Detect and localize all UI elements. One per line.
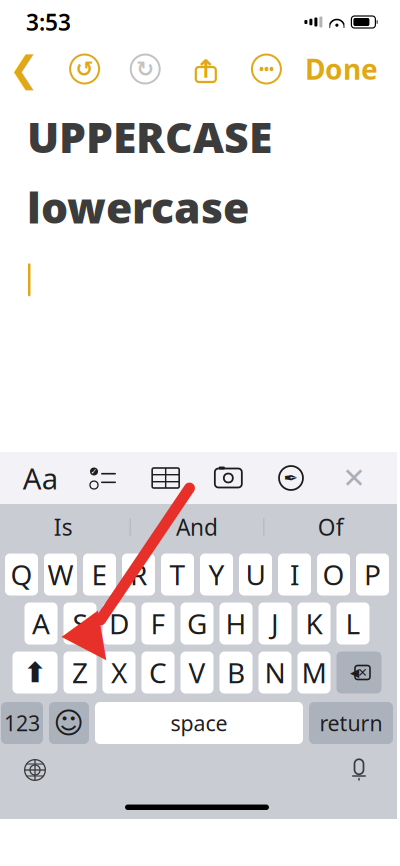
staticText: ◀ [350,666,359,679]
button[interactable]: H [219,602,252,644]
button[interactable]: Z [63,651,96,693]
button[interactable]: Share [184,45,228,93]
button[interactable]: W [44,553,77,595]
staticText: ↻ [136,57,154,81]
staticText: Q [10,556,32,593]
button[interactable]: Close [322,452,385,504]
button[interactable]: P [356,553,389,595]
staticText: C [149,654,167,691]
staticText: W [47,556,73,593]
staticText: ✕ [357,666,367,679]
staticText: return [319,709,382,737]
staticText: J [271,605,279,642]
staticText: space [170,709,227,737]
button[interactable]: K [297,602,330,644]
button[interactable]: F [141,602,174,644]
staticText: F [150,605,165,642]
button[interactable]: T [161,553,194,595]
button[interactable]: I [278,553,311,595]
staticText: H [225,605,246,642]
staticText: ❮ [9,49,39,89]
staticText: R [130,556,147,593]
button[interactable]: L [336,602,369,644]
button[interactable]: return [309,702,393,744]
button[interactable]: B [219,651,252,693]
staticText: D [109,605,129,642]
button[interactable]: Markup [260,452,322,504]
button[interactable]: C [141,651,174,693]
staticText: And [176,512,218,542]
button[interactable]: X [102,651,135,693]
staticText: U [245,556,265,593]
button[interactable]: Redo [123,45,167,93]
staticText: I [290,556,299,593]
button[interactable]: S [63,602,96,644]
button[interactable]: O [317,553,350,595]
button[interactable]: Camera [197,452,260,504]
staticText: T [169,556,185,593]
staticText: Y [208,556,224,593]
staticText: E [91,556,107,593]
staticText: ••• [259,60,274,78]
staticText: Z [72,654,88,691]
staticText: UPPERCASE [27,108,272,165]
button[interactable]: Y [200,553,233,595]
staticText: Aa [23,458,58,497]
button[interactable]: More [244,45,288,93]
button[interactable]: Table [134,452,197,504]
staticText: ▼ [67,605,112,671]
staticText: ⬆ [23,657,46,688]
staticText: ✓ [90,467,97,476]
button[interactable]: Emoji [49,702,89,744]
staticText: ✒ [283,468,298,488]
button[interactable]: N [258,651,291,693]
staticText: ☺ [53,706,84,740]
button[interactable]: Back [2,45,46,93]
staticText: K [305,605,322,642]
button[interactable]: Is [0,504,130,550]
staticText: S [72,605,87,642]
staticText: Done [305,50,378,88]
staticText: ✕ [342,462,365,494]
button[interactable]: R [122,553,155,595]
button[interactable]: Undo [63,45,107,93]
button[interactable]: U [239,553,272,595]
button[interactable]: Next keyboard [13,753,57,787]
staticText: lowercase [27,179,249,235]
staticText: M [301,654,326,691]
button[interactable]: M [297,651,330,693]
button[interactable]: A [24,602,57,644]
button[interactable]: And [131,504,263,550]
button[interactable]: space [95,702,303,744]
button[interactable]: Q [5,553,38,595]
button[interactable]: D [102,602,135,644]
staticText: P [364,556,381,593]
staticText: X [111,654,127,691]
button[interactable]: Shift [12,651,57,693]
button[interactable]: Of [264,504,397,550]
staticText: A [32,605,50,642]
staticText: L [345,605,360,642]
button[interactable]: Checklist [72,452,134,504]
button[interactable]: E [83,553,116,595]
button[interactable]: Text format [9,452,72,504]
staticText: Is [54,512,73,542]
button[interactable]: G [180,602,213,644]
staticText: ↑ [195,55,216,83]
staticText: G [187,605,207,642]
staticText: N [264,654,285,691]
staticText: Of [318,512,344,542]
button[interactable]: J [258,602,291,644]
staticText: O [322,556,344,593]
staticText: B [227,654,245,691]
button[interactable]: Done [305,45,378,93]
button[interactable]: V [180,651,213,693]
staticText: V [188,654,205,691]
staticText: ↺ [76,57,94,81]
staticText: 3:53 [26,7,71,37]
button[interactable]: Dictate [337,753,381,787]
button[interactable]: Delete [336,651,381,693]
staticText: 123 [4,709,40,737]
button[interactable]: 123 [1,702,43,744]
